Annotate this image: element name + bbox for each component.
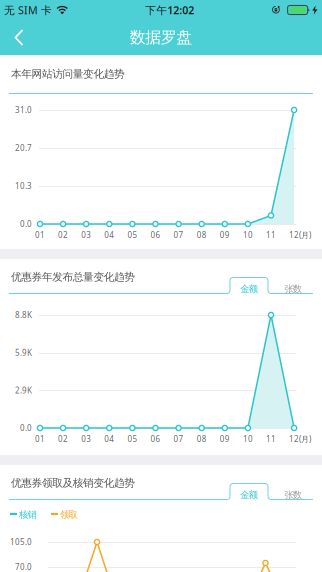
staticText: 02 <box>58 434 68 444</box>
staticText: 09 <box>220 434 230 444</box>
staticText: 20.7 <box>15 143 32 153</box>
staticText: 优惠券年发布总量变化趋势 <box>11 270 135 283</box>
staticText: 04 <box>104 434 114 444</box>
staticText: 06 <box>150 230 160 240</box>
staticText: 11 <box>266 434 276 444</box>
staticText: 0.0 <box>20 423 32 433</box>
staticText: 张数 <box>284 489 302 501</box>
staticText: 无 SIM 卡 <box>4 3 52 17</box>
staticText: 优惠券领取及核销变化趋势 <box>11 476 135 489</box>
staticText: 02 <box>58 230 68 240</box>
staticText: 105.0 <box>10 537 32 547</box>
staticText: 05 <box>127 434 137 444</box>
staticText: 04 <box>104 230 114 240</box>
staticText: 03 <box>81 230 91 240</box>
staticText: 31.0 <box>15 105 32 115</box>
staticText: 0.0 <box>20 219 32 229</box>
staticText: 01 <box>35 434 45 444</box>
staticText: 05 <box>127 230 137 240</box>
staticText: 09 <box>220 230 230 240</box>
staticText: 10.3 <box>15 181 32 191</box>
staticText: 金额 <box>240 489 258 501</box>
staticText: 12(月) <box>289 434 311 444</box>
staticText: 下午12:02 <box>145 3 194 17</box>
button[interactable]: Back <box>0 20 39 55</box>
staticText: 06 <box>150 434 160 444</box>
button[interactable]: 金额 <box>230 488 268 502</box>
staticText: 03 <box>81 434 91 444</box>
staticText: 07 <box>174 230 184 240</box>
staticText: 01 <box>35 230 45 240</box>
staticText: 8.8K <box>15 310 32 320</box>
staticText: 12(月) <box>289 230 311 240</box>
staticText: 10 <box>243 434 253 444</box>
button[interactable]: 金额 <box>230 282 268 296</box>
staticText: 张数 <box>284 283 302 295</box>
button[interactable]: 张数 <box>274 488 312 502</box>
staticText: 领取 <box>60 509 78 520</box>
staticText: 10 <box>243 230 253 240</box>
staticText: 本年网站访问量变化趋势 <box>11 67 125 80</box>
staticText: 5.9K <box>15 347 32 358</box>
staticText: 2.9K <box>15 385 32 396</box>
staticText: 70.0 <box>15 562 32 572</box>
button[interactable]: 张数 <box>274 282 312 296</box>
staticText: 08 <box>197 434 207 444</box>
staticText: 金额 <box>240 283 258 295</box>
staticText: 数据罗盘 <box>130 28 192 47</box>
staticText: 核销 <box>19 509 37 520</box>
staticText: 07 <box>174 434 184 444</box>
staticText: 11 <box>266 230 276 240</box>
staticText: 08 <box>197 230 207 240</box>
